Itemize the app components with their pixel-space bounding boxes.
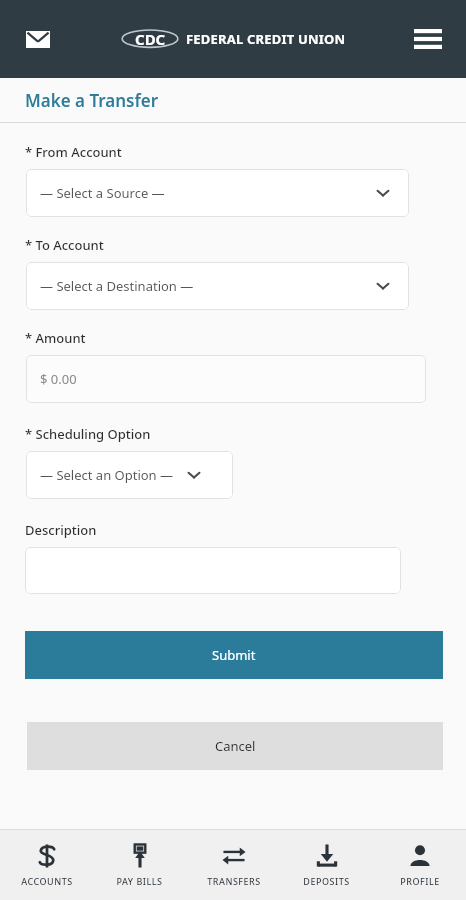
staticText: PROFILE — [400, 875, 440, 887]
button[interactable]: TRANSFERS — [187, 844, 280, 887]
staticText: Make a Transfer — [25, 89, 159, 112]
button[interactable]: ACCOUNTS — [0, 844, 93, 887]
button[interactable]: — Select a Source — — [26, 169, 409, 217]
staticText: Description — [25, 521, 97, 539]
button[interactable] — [25, 547, 401, 594]
button[interactable]: Cancel — [27, 722, 443, 770]
staticText: Cancel — [215, 737, 256, 755]
staticText: * From Account — [25, 143, 122, 161]
staticText: PAY BILLS — [116, 875, 163, 887]
staticText: * Amount — [25, 329, 86, 347]
staticText: ACCOUNTS — [21, 875, 73, 887]
button[interactable]: DEPOSITS — [280, 844, 373, 887]
staticText: — Select a Destination — — [40, 277, 375, 295]
staticText: FEDERAL CREDIT UNION — [186, 30, 346, 48]
staticText: Submit — [212, 646, 256, 664]
staticText: CDC — [135, 29, 166, 49]
staticText: * To Account — [25, 236, 104, 254]
button[interactable]: Menu — [404, 15, 452, 63]
button[interactable]: Submit — [25, 631, 443, 679]
staticText: DEPOSITS — [303, 875, 350, 887]
button[interactable]: $ 0.00 — [26, 355, 426, 403]
staticText: — Select an Option — — [40, 466, 174, 484]
button[interactable]: — Select a Destination — — [26, 262, 409, 310]
button[interactable]: Messages — [14, 15, 62, 63]
staticText: * Scheduling Option — [25, 425, 151, 443]
staticText: — Select a Source — — [40, 184, 375, 202]
button[interactable]: PROFILE — [373, 844, 466, 887]
button[interactable]: — Select an Option — — [26, 451, 233, 499]
staticText: TRANSFERS — [207, 875, 261, 887]
button[interactable]: PAY BILLS — [93, 844, 186, 887]
staticText: $ 0.00 — [40, 370, 77, 388]
